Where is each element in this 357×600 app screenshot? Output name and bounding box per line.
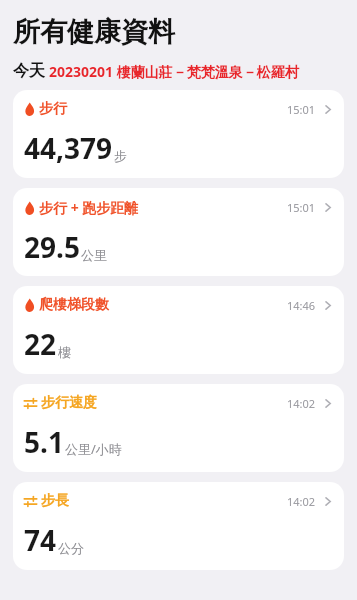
staticText: 步長	[41, 492, 69, 510]
staticText: 14:02	[287, 494, 316, 509]
staticText: 爬樓梯段數	[39, 296, 109, 314]
other: View 步長 details	[323, 495, 333, 508]
other: View 步行速度 details	[323, 397, 333, 410]
staticText: 步	[114, 148, 127, 164]
staticText: 22	[24, 325, 57, 363]
other: View 爬樓梯段數 details	[323, 299, 333, 312]
staticText: 公里	[81, 247, 107, 263]
button[interactable]: 步行	[13, 90, 344, 178]
staticText: 5.1	[24, 423, 64, 461]
staticText: 20230201 樓蘭山莊－梵梵溫泉－松羅村	[49, 62, 299, 81]
staticText: 公分	[58, 540, 84, 556]
staticText: 14:02	[287, 396, 316, 411]
button[interactable]: 步長	[13, 482, 344, 570]
other: View 步行 + 跑步距離 details	[323, 201, 333, 214]
staticText: 15:01	[287, 102, 316, 117]
staticText: 公里/小時	[65, 440, 122, 458]
staticText: 樓	[58, 344, 71, 360]
button[interactable]: 步行速度	[13, 384, 344, 472]
button[interactable]: 爬樓梯段數	[13, 286, 344, 374]
staticText: 44,379	[24, 129, 113, 167]
staticText: 29.5	[24, 228, 80, 266]
staticText: 步行 + 跑步距離	[39, 198, 139, 217]
staticText: 步行速度	[41, 394, 97, 412]
staticText: 15:01	[287, 200, 316, 215]
button[interactable]: 步行 + 跑步距離	[13, 188, 344, 276]
staticText: 所有健康資料	[13, 15, 175, 49]
staticText: 今天	[13, 61, 45, 81]
staticText: 74	[24, 521, 57, 559]
other: View 步行 details	[323, 103, 333, 116]
staticText: 步行	[39, 100, 67, 118]
staticText: 14:46	[287, 298, 316, 313]
